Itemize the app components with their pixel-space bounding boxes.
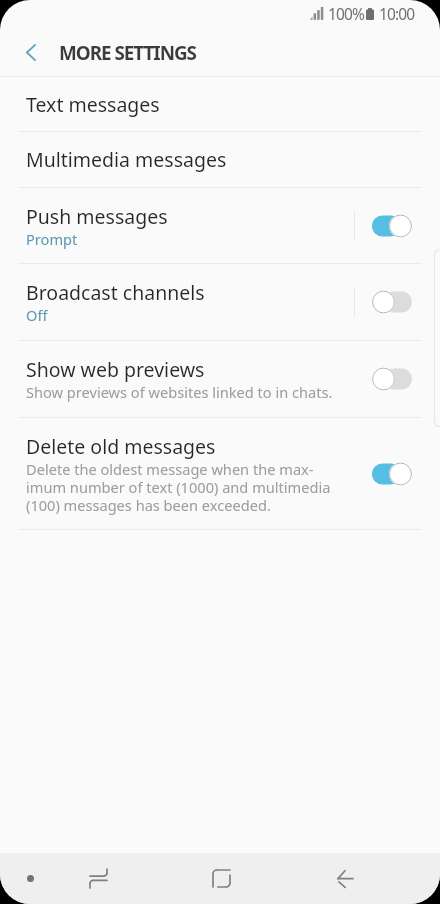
staticText: Broadcast channels [26, 279, 205, 306]
button[interactable]: Push messages [0, 188, 440, 263]
button[interactable]: On [371, 452, 412, 496]
button[interactable]: Back [320, 853, 370, 904]
staticText: Off [26, 307, 48, 325]
button[interactable]: On [371, 204, 412, 248]
staticText: Delete old messages [26, 433, 216, 460]
button[interactable]: Off [371, 280, 412, 324]
button[interactable]: Text messages [0, 77, 440, 131]
staticText: Show previews of websites linked to in c… [26, 384, 333, 402]
button[interactable]: Back [7, 29, 55, 75]
button[interactable]: Home [196, 853, 246, 904]
button[interactable]: Broadcast channels [0, 264, 440, 340]
staticText: 100% [328, 3, 364, 24]
staticText: Text messages [26, 91, 160, 118]
staticText: Multimedia messages [26, 146, 227, 173]
staticText: Push messages [26, 203, 168, 230]
button[interactable]: Off [371, 357, 412, 401]
staticText: Show web previews [26, 356, 205, 383]
staticText: 10:00 [379, 3, 415, 24]
button[interactable]: Recents [73, 853, 123, 904]
button[interactable]: Multimedia messages [0, 132, 440, 187]
button[interactable]: Show web previews [0, 341, 440, 417]
button[interactable]: Delete old messages [0, 418, 440, 529]
staticText: Prompt [26, 231, 78, 249]
staticText: MORE SETTINGS [59, 40, 196, 66]
staticText: Delete the oldest message when the max- … [26, 461, 331, 515]
